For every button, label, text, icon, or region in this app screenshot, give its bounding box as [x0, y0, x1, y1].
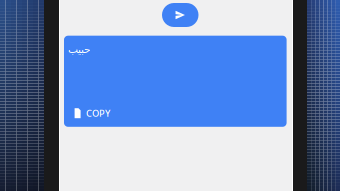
staticText: COPY	[86, 107, 110, 119]
button[interactable]: Send	[162, 3, 198, 27]
staticText: حبيب	[67, 43, 90, 55]
button[interactable]: COPY	[64, 106, 118, 120]
